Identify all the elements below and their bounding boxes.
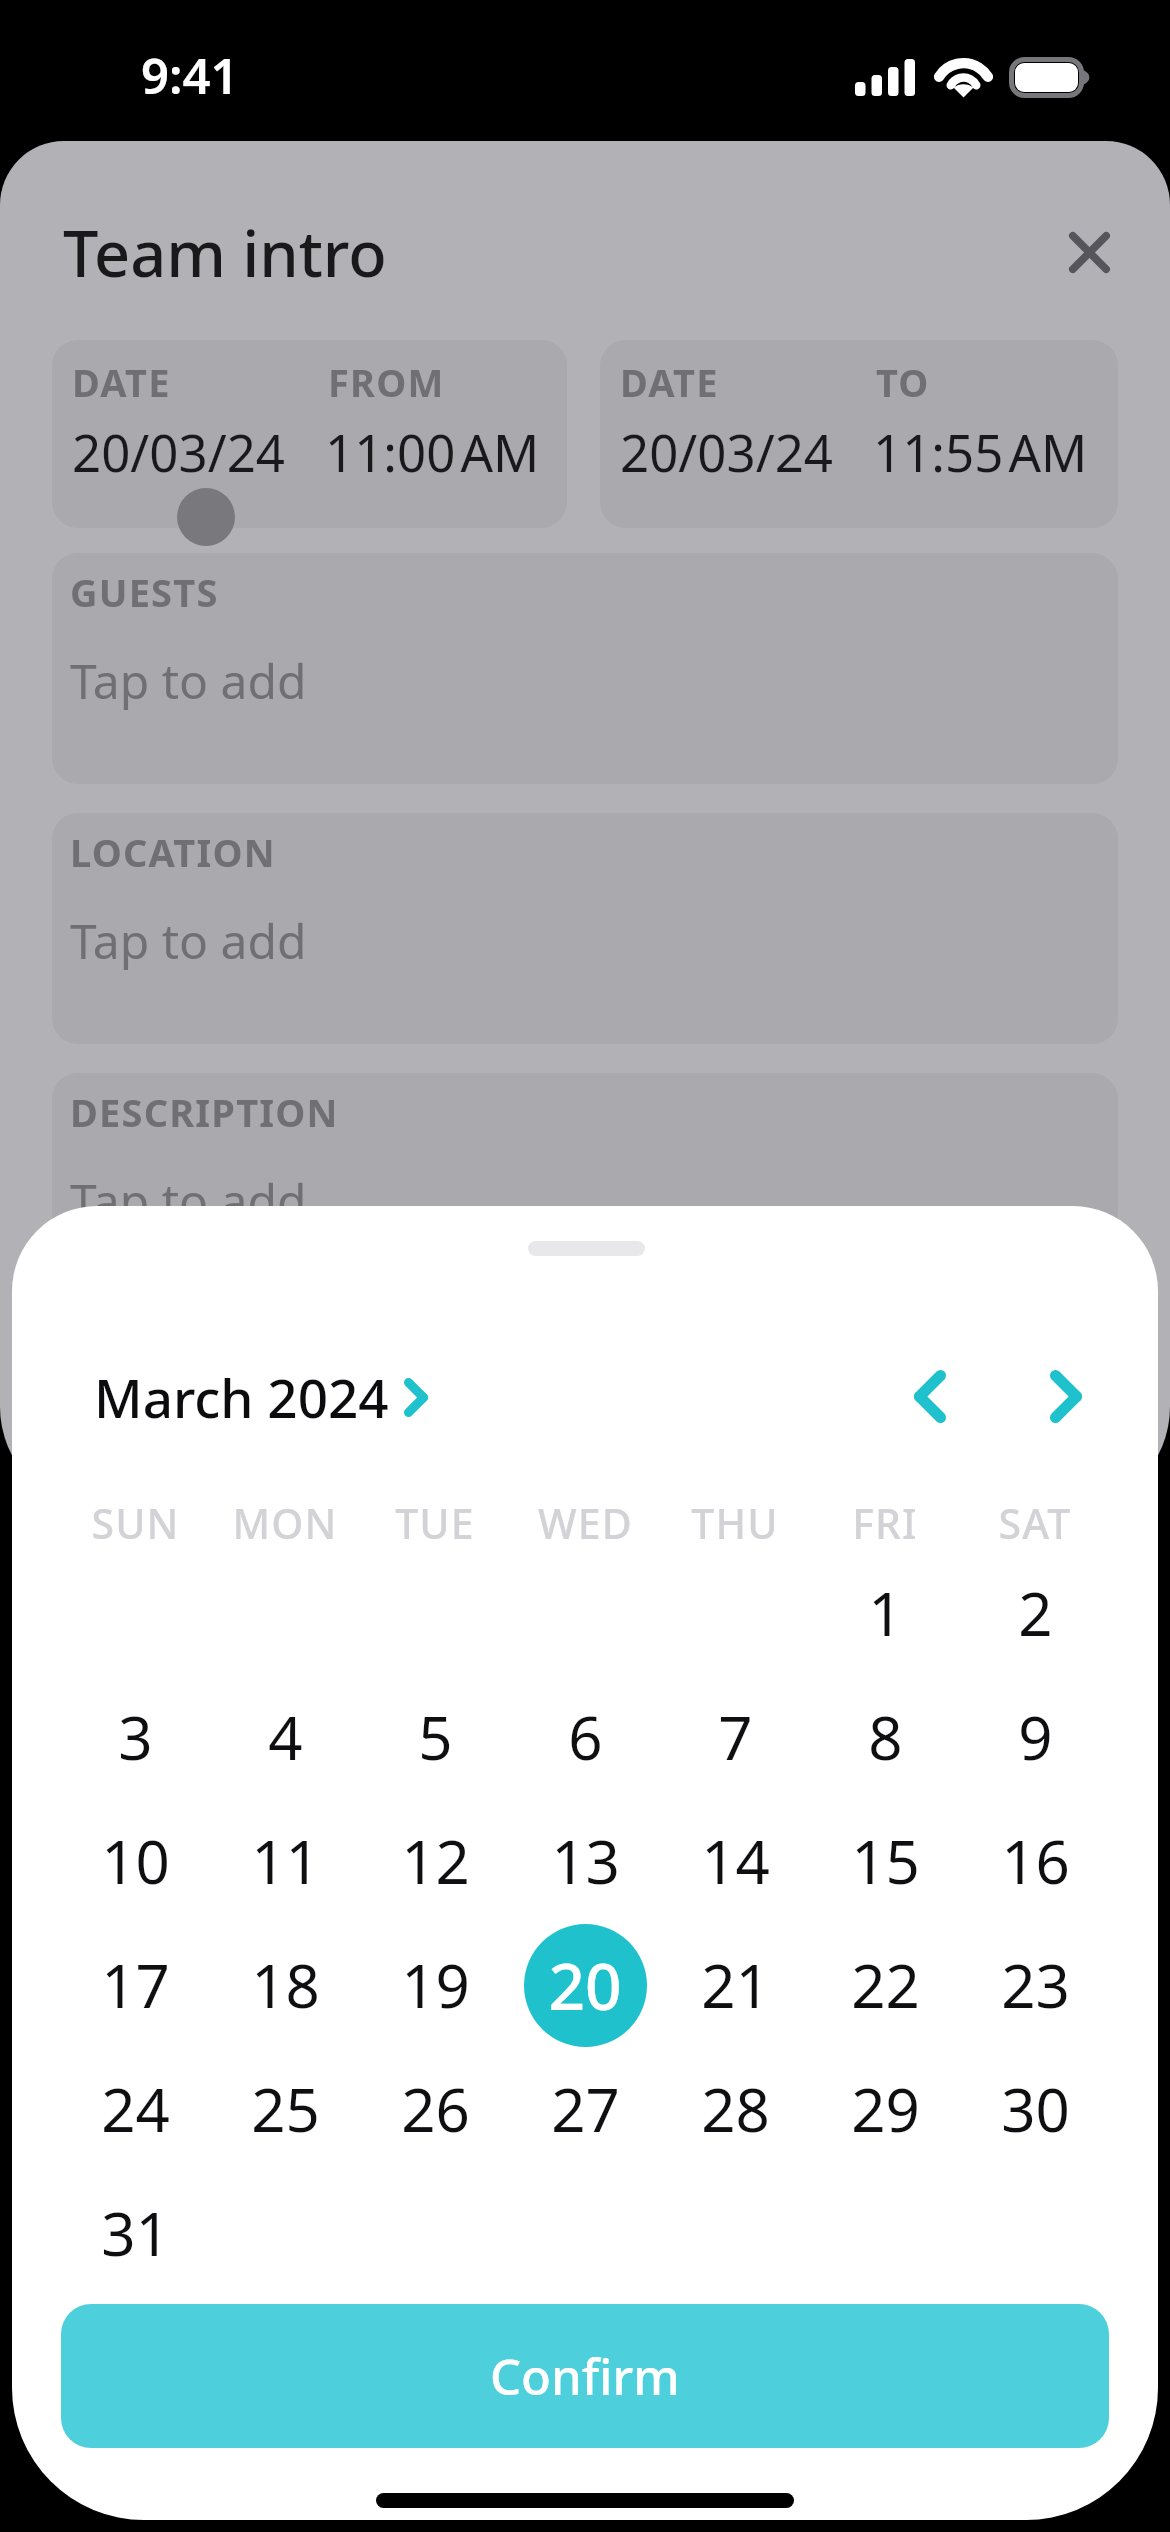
button[interactable]: 8 [823,1675,947,1799]
button[interactable]: 7 [673,1675,797,1799]
staticText: 8 [868,1696,903,1778]
button[interactable]: Confirm [61,2304,1109,2448]
staticText: FROM [328,356,445,408]
staticText: 9:41 [141,42,239,109]
staticText: 11:00 AM [325,417,540,486]
staticText: THU [691,1495,779,1551]
button[interactable]: 6 [523,1675,647,1799]
button[interactable]: DATE [600,340,1118,528]
staticText: 18 [251,1944,320,2026]
staticText: 11:55 AM [873,417,1088,486]
staticText: 20/03/24 [72,417,285,486]
button[interactable]: Next month [1018,1348,1114,1444]
button[interactable]: 26 [373,2047,497,2171]
button[interactable]: 25 [223,2047,347,2171]
staticText: DESCRIPTION [70,1086,339,1138]
button[interactable]: GUESTS [52,553,1118,784]
button[interactable]: Previous month [882,1348,978,1444]
button[interactable]: 14 [673,1799,797,1923]
staticText: DATE [72,356,171,408]
staticText: 2 [1018,1572,1053,1654]
button[interactable]: 23 [973,1923,1097,2047]
button[interactable]: DESCRIPTION [52,1073,1118,1304]
button[interactable]: 19 [373,1923,497,2047]
staticText: Team intro [63,210,387,296]
staticText: 26 [401,2068,470,2150]
staticText: 13 [551,1820,620,1902]
button[interactable]: DATE [52,340,567,528]
button[interactable]: 4 [223,1675,347,1799]
staticText: 30 [1001,2068,1070,2150]
button[interactable]: LOCATION [52,813,1118,1044]
staticText: 10 [101,1820,170,1902]
staticText: LOCATION [70,826,276,878]
staticText: 22 [851,1944,920,2026]
staticText: 3 [118,1696,153,1778]
staticText: 16 [1001,1820,1070,1902]
staticText: WED [538,1495,633,1551]
staticText: GUESTS [70,566,219,618]
button[interactable]: 17 [73,1923,197,2047]
staticText: 6 [568,1696,603,1778]
staticText: 20/03/24 [620,417,833,486]
staticText: 27 [551,2068,620,2150]
staticText: Tap to add [70,648,307,713]
button[interactable]: 11 [223,1799,347,1923]
button[interactable]: 15 [823,1799,947,1923]
button[interactable]: 13 [523,1799,647,1923]
button[interactable]: 29 [823,2047,947,2171]
staticText: 19 [401,1944,470,2026]
staticText: MON [232,1495,338,1551]
staticText: 14 [701,1820,770,1902]
button[interactable]: 3 [73,1675,197,1799]
staticText: 25 [251,2068,320,2150]
staticText: 17 [101,1944,170,2026]
staticText: Tap to add [70,908,307,973]
staticText: 7 [718,1696,753,1778]
staticText: DATE [620,356,719,408]
staticText: March 2024 [94,1361,389,1433]
staticText: TO [876,356,930,408]
staticText: 1 [868,1572,903,1654]
button[interactable]: 10 [73,1799,197,1923]
staticText: 28 [701,2068,770,2150]
staticText: 5 [418,1696,453,1778]
staticText: TUE [395,1495,475,1551]
button[interactable]: 31 [73,2171,197,2295]
staticText: 11 [251,1820,320,1902]
button[interactable]: 12 [373,1799,497,1923]
button[interactable]: Close [1043,206,1135,298]
staticText: 12 [401,1820,470,1902]
staticText: Tap to add [70,1168,307,1233]
staticText: 23 [1001,1944,1070,2026]
button[interactable]: 24 [73,2047,197,2171]
button[interactable]: 22 [823,1923,947,2047]
staticText: 15 [851,1820,920,1902]
staticText: 21 [701,1944,770,2026]
staticText: 4 [268,1696,303,1778]
staticText: 31 [101,2192,170,2274]
button[interactable]: 21 [673,1923,797,2047]
button[interactable]: Choose month [372,1353,460,1441]
staticText: SUN [91,1495,180,1551]
staticText: SAT [998,1495,1072,1551]
button[interactable]: 9 [973,1675,1097,1799]
button[interactable]: 16 [973,1799,1097,1923]
button[interactable]: 5 [373,1675,497,1799]
staticText: 24 [101,2068,170,2150]
staticText: Confirm [490,2343,680,2410]
button[interactable]: 27 [523,2047,647,2171]
button[interactable]: 20 [523,1923,647,2047]
button[interactable]: 1 [823,1551,947,1675]
staticText: 9 [1018,1696,1053,1778]
staticText: FRI [852,1495,918,1551]
button[interactable]: 18 [223,1923,347,2047]
button[interactable]: 30 [973,2047,1097,2171]
button[interactable]: 2 [973,1551,1097,1675]
button[interactable]: 28 [673,2047,797,2171]
staticText: 20 [548,1942,622,2029]
staticText: 29 [851,2068,920,2150]
